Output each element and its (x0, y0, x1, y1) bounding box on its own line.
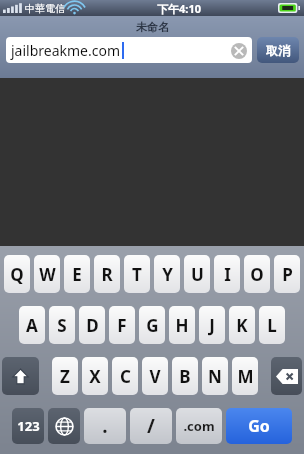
button[interactable]: Shift (2, 357, 39, 395)
button[interactable]: U (184, 255, 210, 293)
button[interactable]: O (244, 255, 270, 293)
staticText: B (179, 365, 191, 388)
staticText: Y (162, 263, 173, 286)
staticText: H (175, 314, 189, 337)
staticText: 下午4:10 (157, 1, 201, 16)
staticText: 中華電信 (25, 2, 65, 15)
staticText: .com (183, 417, 215, 435)
staticText: J (209, 314, 215, 337)
staticText: . (102, 413, 108, 439)
staticText: C (120, 365, 131, 388)
button[interactable]: P (274, 255, 300, 293)
staticText: R (101, 263, 113, 286)
staticText: Q (10, 263, 24, 286)
button[interactable]: J (199, 306, 225, 344)
button[interactable]: I (214, 255, 240, 293)
staticText: A (26, 314, 38, 337)
staticText: S (57, 314, 67, 337)
staticText: L (267, 314, 277, 337)
button[interactable]: 取消 (257, 37, 299, 63)
button[interactable]: F (109, 306, 135, 344)
staticText: Z (60, 365, 70, 388)
other: Change keyboard (48, 408, 80, 444)
button[interactable]: Z (52, 357, 78, 395)
button[interactable]: .com (176, 408, 222, 444)
other: Shift (2, 357, 39, 395)
button[interactable]: Go (226, 408, 292, 444)
other: Backspace (271, 357, 302, 395)
button[interactable]: V (142, 357, 168, 395)
button[interactable]: . (84, 408, 126, 444)
staticText: D (86, 314, 99, 337)
staticText: / (147, 413, 155, 439)
button[interactable]: 123 (12, 408, 44, 444)
button[interactable]: B (172, 357, 198, 395)
staticText: Go (248, 415, 270, 437)
button[interactable]: Change keyboard (48, 408, 80, 444)
button[interactable]: N (202, 357, 228, 395)
button[interactable]: H (169, 306, 195, 344)
staticText: M (237, 365, 254, 388)
staticText: O (250, 263, 264, 286)
button[interactable]: X (82, 357, 108, 395)
button[interactable]: G (139, 306, 165, 344)
staticText: jailbreakme.com (11, 41, 121, 60)
button[interactable]: jailbreakme.com (6, 37, 252, 63)
staticText: G (146, 314, 159, 337)
staticText: F (117, 314, 127, 337)
staticText: U (191, 263, 204, 286)
staticText: N (208, 365, 222, 388)
staticText: W (39, 263, 56, 286)
staticText: X (89, 365, 101, 388)
button[interactable]: Q (4, 255, 30, 293)
button[interactable]: D (79, 306, 105, 344)
button[interactable]: R (94, 255, 120, 293)
button[interactable]: A (19, 306, 45, 344)
staticText: K (236, 314, 248, 337)
staticText: V (149, 365, 161, 388)
button[interactable]: / (130, 408, 172, 444)
button[interactable]: Backspace (271, 357, 302, 395)
button[interactable]: T (124, 255, 150, 293)
staticText: T (132, 263, 142, 286)
button[interactable]: E (64, 255, 90, 293)
button[interactable]: C (112, 357, 138, 395)
button[interactable]: L (259, 306, 285, 344)
staticText: 未命名 (136, 20, 169, 34)
staticText: 123 (17, 417, 40, 435)
staticText: 取消 (266, 43, 290, 58)
button[interactable]: Y (154, 255, 180, 293)
staticText: I (224, 263, 231, 286)
button[interactable]: M (232, 357, 258, 395)
staticText: E (72, 263, 82, 286)
button[interactable]: W (34, 255, 60, 293)
button[interactable]: Clear text (231, 43, 247, 59)
button[interactable]: S (49, 306, 75, 344)
staticText: P (282, 263, 293, 286)
button[interactable]: K (229, 306, 255, 344)
